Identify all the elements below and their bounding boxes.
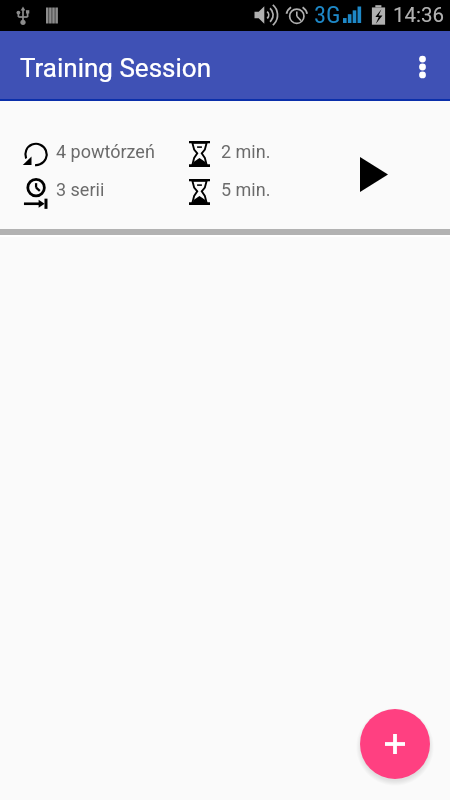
staticText: 2 min. (221, 141, 271, 162)
button[interactable]: 4 powtórzeń (0, 101, 450, 229)
staticText: 5 min. (221, 179, 271, 200)
staticText: 14:36 (393, 3, 445, 27)
staticText: Training Session (20, 53, 211, 83)
staticText: 3G (314, 0, 341, 29)
button[interactable]: More options (395, 39, 450, 94)
staticText: 3 serii (56, 179, 105, 200)
staticText: 4 powtórzeń (56, 141, 155, 162)
button[interactable]: Add (360, 709, 430, 779)
button[interactable]: Start session (347, 147, 401, 201)
